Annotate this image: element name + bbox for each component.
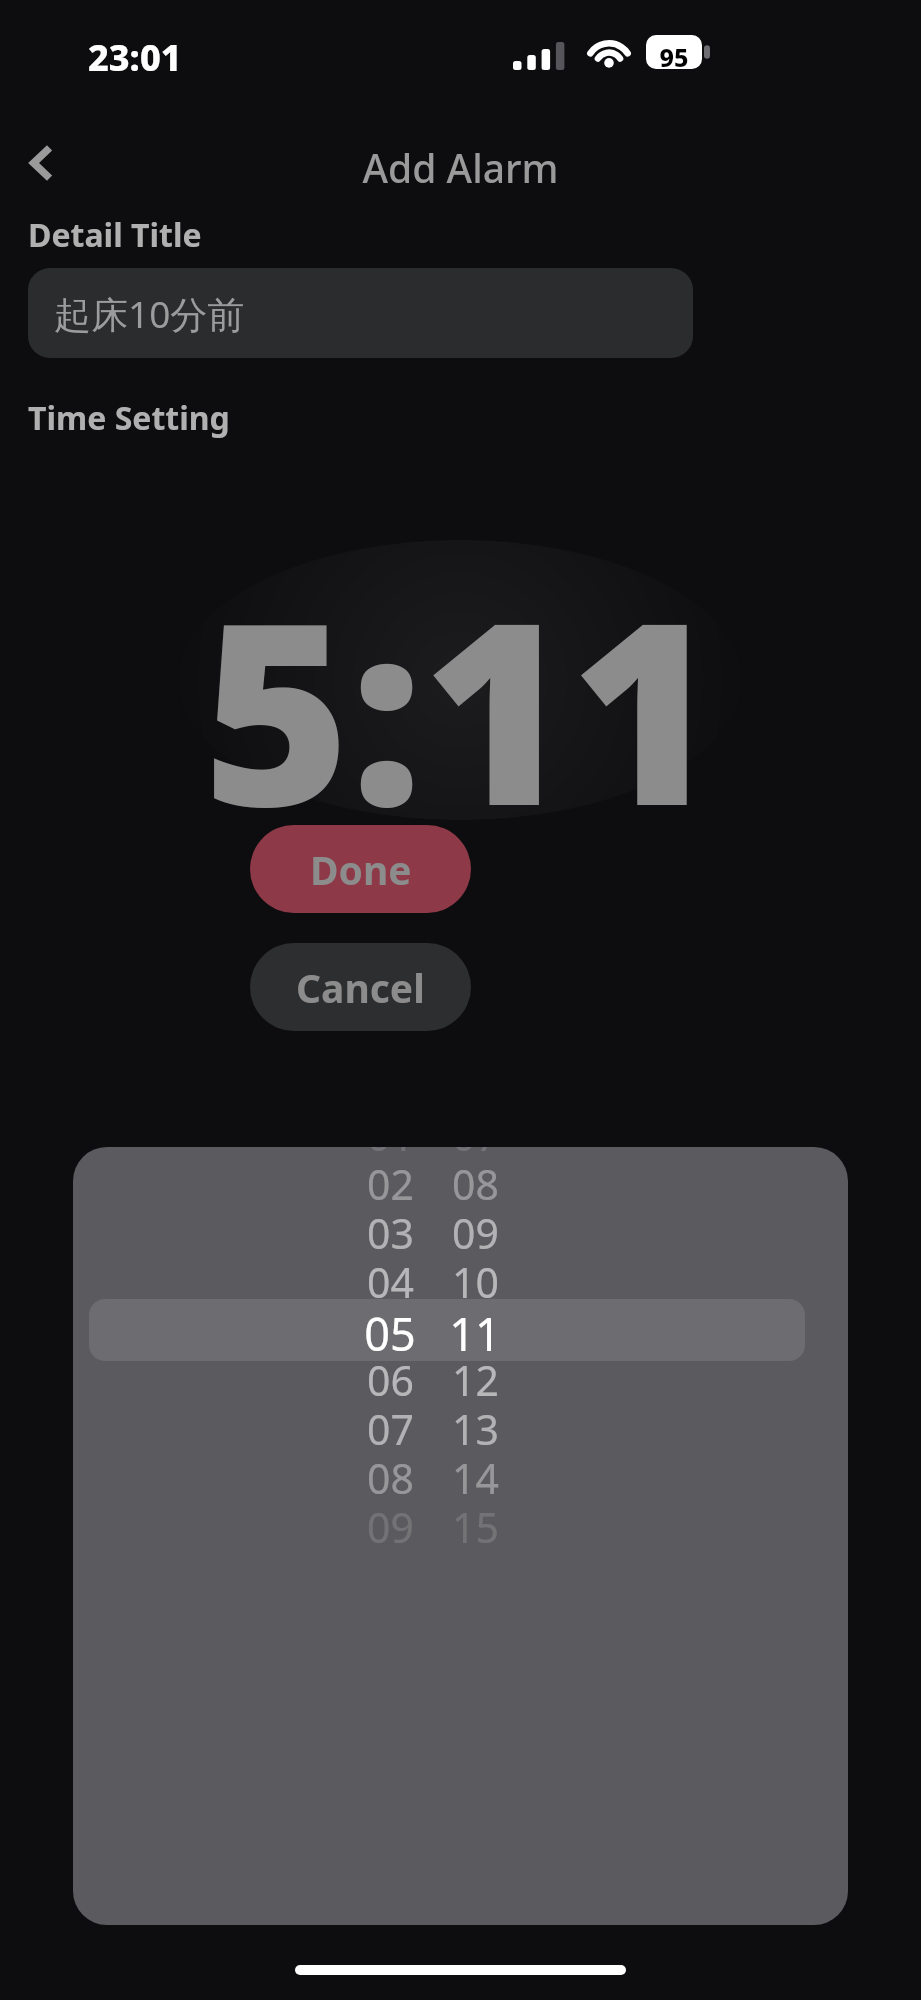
- staticText: Detail Title: [28, 213, 202, 257]
- button[interactable]: 10: [402, 1254, 548, 1308]
- staticText: Add Alarm: [0, 141, 921, 194]
- button[interactable]: 09: [402, 1205, 548, 1259]
- staticText: Done: [310, 843, 412, 896]
- button[interactable]: Cancel: [250, 943, 471, 1031]
- button[interactable]: Home: [295, 1965, 626, 1975]
- staticText: 04: [367, 1254, 414, 1308]
- button[interactable]: 15: [402, 1499, 548, 1553]
- button[interactable]: 起床10分前: [28, 268, 693, 358]
- button[interactable]: 03: [317, 1205, 463, 1259]
- staticText: 10: [452, 1254, 499, 1308]
- staticText: 23:01: [88, 33, 182, 82]
- button[interactable]: 09: [317, 1499, 463, 1553]
- staticText: 起床10分前: [54, 288, 245, 339]
- staticText: 03: [367, 1205, 414, 1259]
- staticText: 5:11: [0, 536, 921, 879]
- button[interactable]: 11: [402, 1303, 548, 1357]
- staticText: 02: [367, 1156, 414, 1210]
- button[interactable]: 05: [317, 1303, 463, 1357]
- staticText: Cancel: [296, 961, 425, 1014]
- button[interactable]: 14: [402, 1450, 548, 1504]
- staticText: 14: [452, 1450, 499, 1504]
- staticText: 05: [364, 1303, 416, 1357]
- staticText: 07: [452, 1147, 499, 1161]
- button[interactable]: Done: [250, 825, 471, 913]
- button[interactable]: Back: [6, 127, 78, 199]
- button[interactable]: 08: [317, 1450, 463, 1504]
- button[interactable]: 07: [317, 1401, 463, 1455]
- staticText: 01: [367, 1147, 414, 1161]
- staticText: 07: [367, 1401, 414, 1455]
- staticText: 06: [367, 1352, 414, 1406]
- staticText: 08: [452, 1156, 499, 1210]
- staticText: 09: [452, 1205, 499, 1259]
- button[interactable]: 01: [317, 1147, 463, 1161]
- staticText: 15: [452, 1499, 499, 1553]
- button[interactable]: 04: [317, 1254, 463, 1308]
- button[interactable]: 06: [317, 1352, 463, 1406]
- staticText: 12: [452, 1352, 499, 1406]
- staticText: Time Setting: [28, 396, 230, 440]
- staticText: 11: [449, 1303, 501, 1357]
- button[interactable]: 13: [402, 1401, 548, 1455]
- staticText: 13: [452, 1401, 499, 1455]
- staticText: 95: [646, 40, 702, 74]
- button[interactable]: 07: [402, 1147, 548, 1161]
- button[interactable]: 02: [317, 1156, 463, 1210]
- button[interactable]: 12: [402, 1352, 548, 1406]
- staticText: 09: [367, 1499, 414, 1553]
- button[interactable]: 08: [402, 1156, 548, 1210]
- staticText: 08: [367, 1450, 414, 1504]
